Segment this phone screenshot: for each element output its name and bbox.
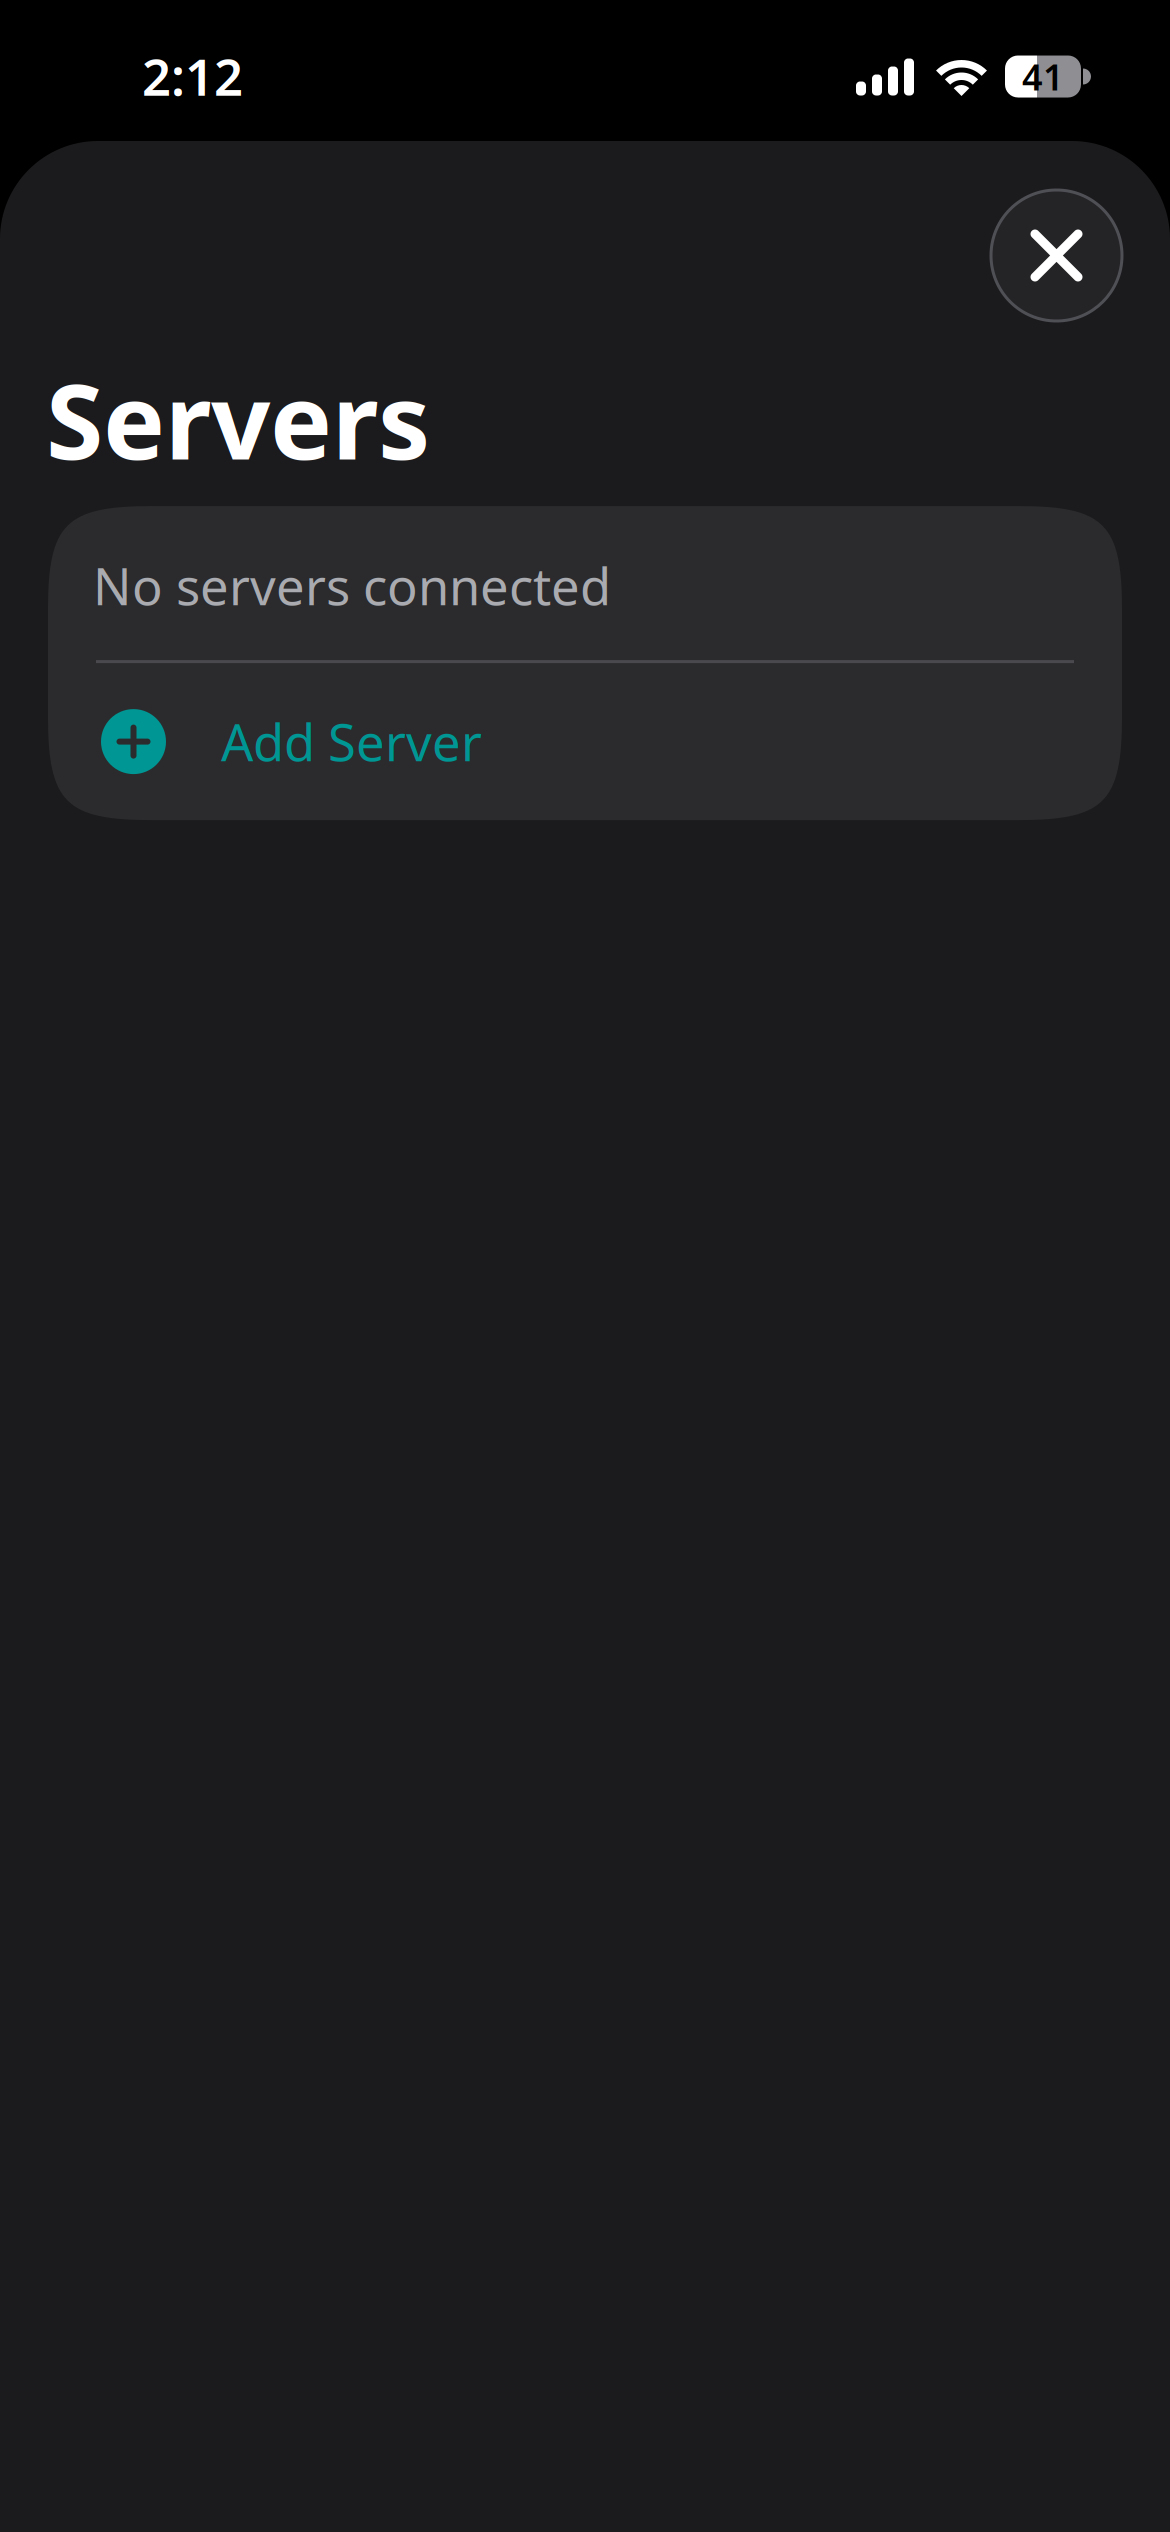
staticText: Add Server: [221, 708, 482, 775]
button[interactable]: Close: [991, 190, 1122, 321]
staticText: No servers connected: [93, 552, 611, 619]
staticText: 2:12: [142, 42, 243, 110]
staticText: Servers: [46, 350, 430, 488]
staticText: 41: [1022, 53, 1064, 100]
button[interactable]: Add Server: [48, 663, 1122, 820]
